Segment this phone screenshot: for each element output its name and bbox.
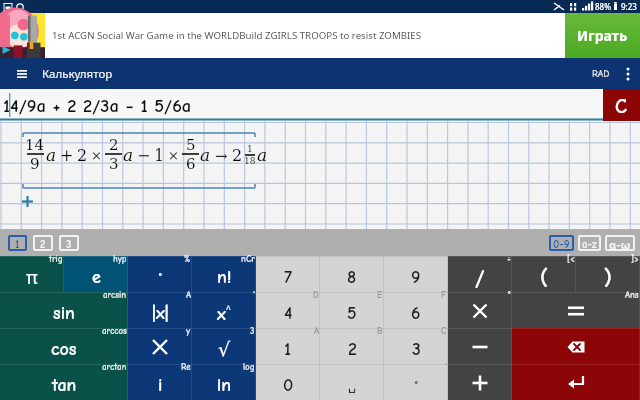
staticText: RAD	[592, 68, 610, 80]
button[interactable]: cos	[0, 328, 128, 364]
staticText: A	[314, 326, 319, 336]
staticText: arctan	[102, 362, 127, 372]
button[interactable]: 9	[384, 256, 448, 292]
staticText: 6	[411, 303, 421, 324]
button[interactable]: Играть	[565, 13, 640, 58]
button[interactable]: ␣	[320, 364, 384, 400]
staticText: 8	[347, 267, 357, 288]
staticText: a	[46, 145, 57, 165]
staticText: a-z	[582, 238, 597, 251]
button[interactable]	[512, 364, 640, 400]
button[interactable]	[448, 328, 512, 364]
staticText: C	[615, 95, 628, 118]
button[interactable]: 5	[320, 292, 384, 328]
button[interactable]	[512, 328, 640, 364]
staticText: 0	[283, 375, 294, 396]
staticText: 2	[77, 146, 88, 165]
button[interactable]: 2	[40, 235, 46, 251]
staticText: 3	[412, 339, 421, 360]
button[interactable]: 1	[256, 328, 320, 364]
button[interactable]: RAD	[592, 68, 610, 80]
button[interactable]: °	[128, 256, 192, 292]
staticText: e	[92, 267, 101, 288]
staticText: 1	[154, 146, 165, 165]
button[interactable]: C	[603, 89, 640, 121]
button[interactable]: 3	[66, 235, 72, 251]
staticText: 9	[411, 267, 421, 288]
staticText: √	[218, 338, 231, 360]
button[interactable]: 1	[15, 235, 20, 251]
staticText: x˄	[217, 301, 231, 326]
button[interactable]: 6	[384, 292, 448, 328]
staticText: 2	[348, 339, 357, 360]
staticText: −	[137, 146, 151, 165]
staticText: 6	[186, 155, 196, 172]
staticText: )	[604, 265, 612, 290]
button[interactable]: 4	[256, 292, 320, 328]
staticText: C	[441, 326, 447, 336]
staticText: ␣	[348, 378, 357, 393]
staticText: log	[243, 362, 255, 372]
staticText: 2	[40, 238, 46, 251]
staticText: 14/9a + 2 2/3a − 1 5/6a	[3, 95, 192, 116]
staticText: °	[415, 379, 418, 391]
button[interactable]: e	[64, 256, 128, 292]
button[interactable]: i	[128, 364, 192, 400]
button[interactable]: tan	[0, 364, 128, 400]
button[interactable]: α-ω	[609, 235, 631, 251]
staticText: i	[158, 375, 163, 396]
staticText: Re	[181, 362, 191, 372]
staticText: 1	[247, 144, 253, 154]
button[interactable]: ln	[192, 364, 256, 400]
staticText: /	[475, 265, 485, 290]
button[interactable]: 7	[256, 256, 320, 292]
button[interactable]: (	[512, 256, 576, 292]
staticText: 4	[284, 303, 293, 324]
button[interactable]: |x|	[128, 292, 192, 328]
button[interactable]: °	[384, 364, 448, 400]
button[interactable]: 3	[384, 328, 448, 364]
staticText: [<	[567, 254, 575, 264]
staticText: 0-9	[553, 238, 570, 251]
staticText: Играть	[577, 26, 628, 45]
button[interactable]: n!	[192, 256, 256, 292]
staticText: 9	[30, 155, 40, 172]
staticText: a	[200, 145, 211, 165]
button[interactable]: More options	[616, 62, 640, 86]
button[interactable]: /	[448, 256, 512, 292]
staticText: ÷	[507, 254, 511, 264]
button[interactable]: °	[448, 292, 512, 328]
staticText: 14	[25, 136, 45, 153]
staticText: arccos	[102, 326, 127, 336]
staticText: sin	[53, 303, 75, 324]
staticText: 5	[186, 136, 196, 153]
button[interactable]: )	[576, 256, 640, 292]
button[interactable]: π	[0, 256, 64, 292]
staticText: →	[215, 147, 228, 164]
staticText: 5	[347, 303, 357, 324]
staticText: ]>	[631, 254, 639, 264]
staticText: 7	[284, 267, 293, 288]
staticText: °	[508, 290, 511, 300]
button[interactable]: 1st ACGN Social War Game in the WORLDBui…	[0, 13, 640, 58]
button[interactable]: √	[192, 328, 256, 364]
button[interactable]: sin	[0, 292, 128, 328]
button[interactable]: 2	[320, 328, 384, 364]
button[interactable]: 0	[256, 364, 320, 400]
staticText: n!	[217, 267, 232, 288]
staticText: F	[441, 290, 447, 300]
button[interactable]: a-z	[582, 235, 597, 251]
button[interactable]: 8	[320, 256, 384, 292]
button[interactable]: x˄	[192, 292, 256, 328]
staticText: D	[313, 290, 319, 300]
staticText: 18	[244, 156, 256, 166]
staticText: nCr	[241, 254, 255, 264]
staticText: +	[60, 146, 74, 165]
staticText: E	[377, 290, 383, 300]
button[interactable]: 0-9	[553, 235, 570, 251]
staticText: hyp	[113, 254, 127, 264]
button[interactable]: y	[128, 328, 192, 364]
button[interactable]	[448, 364, 512, 400]
button[interactable]: Menu	[8, 60, 36, 88]
button[interactable]: Ans	[512, 292, 640, 328]
